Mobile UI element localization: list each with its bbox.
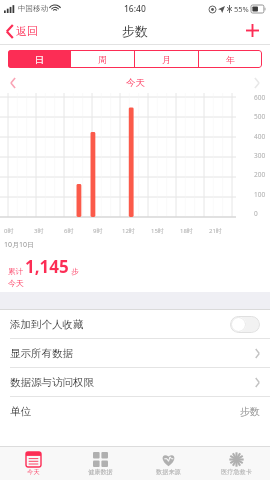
staticText: 返回: [16, 24, 38, 38]
staticText: 周: [98, 54, 107, 65]
staticText: 10月10日: [4, 240, 35, 250]
staticText: 步数: [240, 405, 260, 418]
staticText: 1,145: [25, 255, 69, 278]
staticText: 0时: [4, 227, 14, 235]
staticText: 数据来源: [156, 468, 181, 476]
staticText: 步数: [122, 23, 148, 39]
staticText: 12时: [122, 227, 135, 235]
button[interactable]: 添加到个人收藏: [0, 310, 270, 338]
staticText: 200: [254, 170, 266, 178]
staticText: 15时: [151, 227, 164, 235]
button[interactable]: 后一天: [244, 75, 270, 91]
button[interactable]: 今天: [0, 447, 67, 480]
button[interactable]: 前一天: [0, 75, 26, 91]
staticText: 21时: [209, 227, 222, 235]
staticText: 步: [71, 267, 79, 276]
button[interactable]: 添加: [235, 19, 270, 42]
staticText: 中国移动: [18, 4, 48, 13]
staticText: 16:40: [124, 3, 146, 15]
staticText: 单位: [10, 405, 31, 418]
staticText: 0: [254, 209, 258, 217]
button[interactable]: 显示所有数据: [0, 339, 270, 367]
staticText: 3时: [34, 227, 44, 235]
staticText: 医疗急救卡: [221, 468, 252, 476]
button[interactable]: 年: [199, 50, 262, 68]
button[interactable]: 日: [8, 50, 70, 68]
staticText: 年: [226, 54, 235, 65]
staticText: 今天: [126, 77, 145, 89]
staticText: 数据源与访问权限: [10, 376, 94, 389]
button[interactable]: 健康数据: [67, 447, 134, 480]
button[interactable]: 月: [135, 50, 198, 68]
button[interactable]: 数据来源: [134, 447, 202, 480]
button[interactable]: 返回: [0, 20, 46, 42]
staticText: 日: [35, 54, 44, 65]
button[interactable]: 周: [71, 50, 134, 68]
staticText: 今天: [8, 278, 24, 288]
staticText: 健康数据: [88, 468, 113, 476]
staticText: 今天: [27, 468, 40, 476]
staticText: 添加到个人收藏: [10, 318, 84, 331]
staticText: 显示所有数据: [10, 347, 73, 360]
staticText: 500: [254, 112, 266, 120]
staticText: 600: [254, 93, 266, 101]
staticText: 月: [162, 54, 171, 65]
staticText: 300: [254, 151, 266, 159]
button[interactable]: 医疗急救卡: [202, 447, 270, 480]
staticText: 累计: [8, 267, 23, 276]
staticText: 100: [254, 190, 266, 198]
staticText: 18时: [180, 227, 193, 235]
staticText: 55%: [234, 4, 249, 14]
staticText: 9时: [93, 227, 103, 235]
staticText: 400: [254, 132, 266, 140]
button[interactable]: 数据源与访问权限: [0, 368, 270, 396]
staticText: 6时: [64, 227, 74, 235]
button[interactable]: 单位: [0, 397, 270, 425]
